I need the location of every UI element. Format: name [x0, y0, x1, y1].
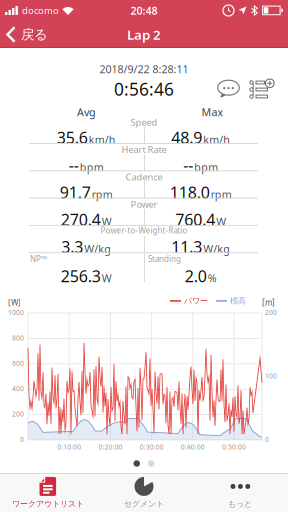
- staticText: 256.3: [61, 265, 101, 287]
- staticText: rpm: [92, 187, 113, 201]
- staticText: 91.7: [60, 182, 91, 203]
- staticText: セグメント: [124, 499, 164, 509]
- staticText: 0: [265, 435, 269, 444]
- staticText: ワークアウトリスト: [12, 499, 84, 509]
- staticText: km/h: [89, 133, 116, 147]
- staticText: 11.3: [171, 236, 202, 257]
- staticText: 20:48: [130, 3, 157, 18]
- staticText: 200: [265, 308, 277, 317]
- staticText: 200: [12, 410, 24, 418]
- staticText: 35.6: [57, 127, 88, 148]
- staticText: W/kg: [203, 242, 230, 256]
- staticText: 118.0: [170, 182, 210, 203]
- staticText: 48.9: [171, 127, 202, 148]
- button[interactable]: ラップ追加: [249, 78, 275, 99]
- staticText: Power: [130, 198, 157, 210]
- staticText: rpm: [211, 187, 232, 201]
- staticText: 600: [12, 359, 24, 368]
- button[interactable]: メモ: [217, 79, 240, 98]
- staticText: 戻る: [21, 26, 48, 43]
- staticText: docomo: [22, 4, 59, 17]
- staticText: Speed: [130, 116, 157, 128]
- staticText: Avg: [77, 105, 96, 119]
- staticText: Heart Rate: [121, 143, 166, 156]
- staticText: 0:50:00: [222, 442, 246, 451]
- staticText: [m]: [262, 297, 275, 308]
- staticText: 0:30:00: [140, 442, 164, 451]
- staticText: 800: [12, 333, 24, 342]
- staticText: bpm: [194, 160, 218, 174]
- staticText: Power-to-Weight-Ratio: [100, 225, 187, 236]
- button[interactable]: もっと: [192, 474, 288, 512]
- staticText: W: [216, 214, 226, 229]
- staticText: bpm: [80, 160, 104, 174]
- staticText: --: [183, 154, 193, 175]
- staticText: W: [102, 271, 112, 285]
- staticText: 0: [20, 435, 24, 444]
- staticText: NP™: [30, 253, 47, 264]
- button[interactable]: ワークアウトリスト: [0, 474, 96, 512]
- staticText: 0:56:46: [114, 77, 174, 100]
- staticText: 標高: [230, 296, 246, 306]
- staticText: %: [208, 271, 217, 285]
- staticText: W: [102, 214, 112, 229]
- staticText: 400: [12, 384, 24, 393]
- staticText: [W]: [8, 297, 21, 308]
- staticText: Lap 2: [127, 26, 161, 43]
- staticText: パワー: [184, 296, 208, 306]
- staticText: 0:10:00: [57, 442, 81, 451]
- staticText: Standing: [148, 253, 181, 264]
- staticText: 2.0: [185, 265, 207, 287]
- staticText: Max: [201, 105, 223, 119]
- staticText: 100: [265, 371, 277, 380]
- staticText: もっと: [228, 499, 252, 509]
- button[interactable]: 戻る: [0, 26, 48, 43]
- staticText: 3.3: [61, 236, 83, 257]
- staticText: Cadence: [125, 171, 162, 183]
- staticText: 270.4: [61, 209, 101, 230]
- button[interactable]: セグメント: [96, 474, 192, 512]
- staticText: 760.4: [175, 209, 215, 230]
- staticText: km/h: [203, 133, 230, 147]
- staticText: W/kg: [84, 242, 111, 256]
- staticText: 0:40:00: [181, 442, 205, 451]
- staticText: 0:20:00: [98, 442, 122, 451]
- staticText: --: [69, 154, 79, 175]
- staticText: 2018/9/22 8:28:11: [99, 62, 188, 76]
- staticText: 1000: [8, 308, 24, 317]
